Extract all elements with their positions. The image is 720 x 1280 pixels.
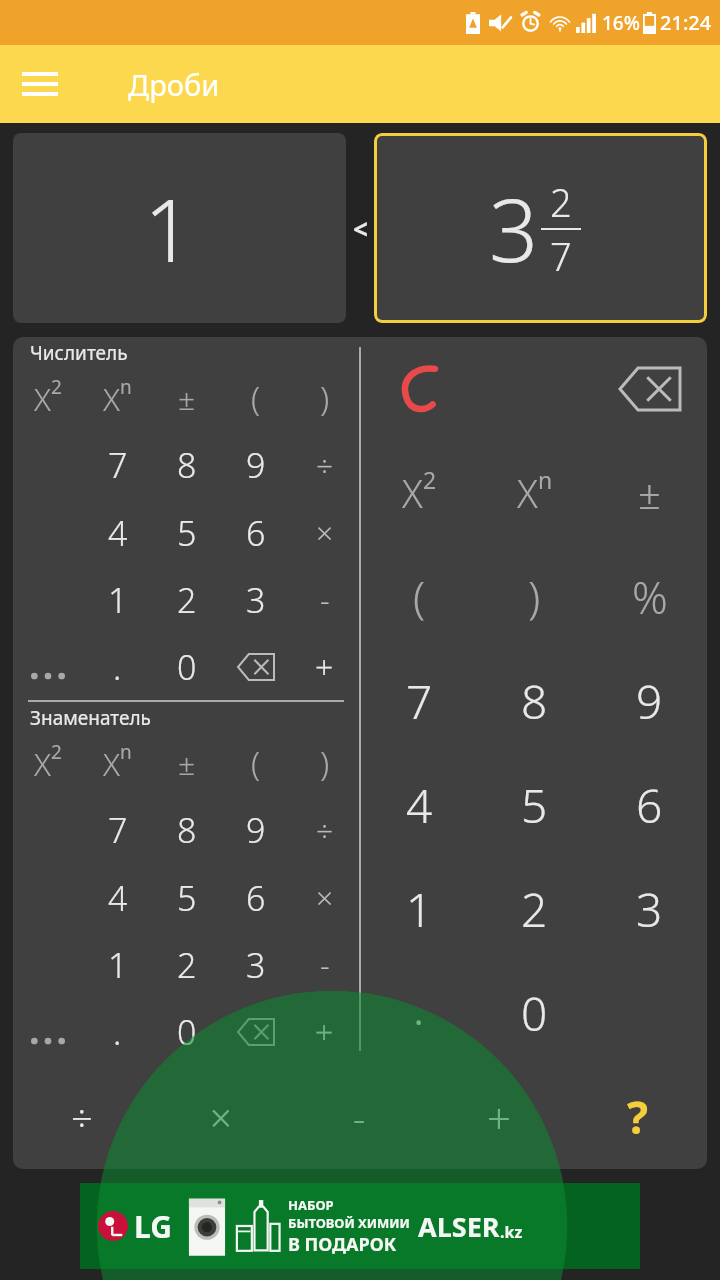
staticText: 7: [406, 670, 433, 733]
button[interactable]: ÷: [13, 1065, 151, 1169]
button[interactable]: -: [290, 931, 359, 998]
staticText: +: [487, 1089, 511, 1146]
staticText: X: [103, 743, 120, 785]
button[interactable]: +: [290, 633, 359, 700]
button[interactable]: X to the power of n: [83, 731, 152, 796]
button[interactable]: 8: [477, 649, 592, 753]
button[interactable]: More: [13, 998, 83, 1065]
staticText: ?: [627, 1087, 648, 1147]
button[interactable]: Clear: [361, 337, 477, 441]
staticText: 2: [423, 464, 437, 495]
button[interactable]: (: [221, 731, 290, 796]
staticText: X: [103, 378, 120, 420]
button[interactable]: 5: [152, 864, 221, 931]
button[interactable]: Backspace: [221, 998, 290, 1065]
button[interactable]: X to the power of 2: [13, 731, 83, 796]
button[interactable]: .: [361, 961, 477, 1065]
button[interactable]: ±: [592, 441, 707, 545]
button[interactable]: X to the power of 2: [361, 441, 477, 545]
button[interactable]: ÷: [290, 431, 359, 499]
button[interactable]: 9: [221, 431, 290, 499]
button[interactable]: 8: [152, 431, 221, 499]
button[interactable]: +: [290, 998, 359, 1065]
button[interactable]: -: [290, 566, 359, 633]
button[interactable]: X to the power of n: [477, 441, 592, 545]
button[interactable]: ): [290, 731, 359, 796]
staticText: 4: [108, 875, 128, 921]
button[interactable]: ×: [290, 499, 359, 566]
button[interactable]: 3: [374, 133, 707, 323]
button[interactable]: More: [13, 633, 83, 700]
button[interactable]: ×: [151, 1065, 290, 1169]
staticText: .kz: [500, 1221, 523, 1243]
button[interactable]: 4: [361, 753, 477, 857]
staticText: +: [315, 645, 334, 689]
button[interactable]: ×: [290, 864, 359, 931]
staticText: 9: [246, 807, 266, 853]
button[interactable]: 6: [221, 864, 290, 931]
button[interactable]: 8: [152, 796, 221, 864]
button[interactable]: 7: [361, 649, 477, 753]
button[interactable]: %: [592, 545, 707, 649]
button[interactable]: Open navigation menu: [14, 58, 66, 110]
button[interactable]: ±: [152, 366, 221, 431]
button[interactable]: 5: [477, 753, 592, 857]
button[interactable]: ): [477, 545, 592, 649]
staticText: -: [320, 579, 330, 620]
staticText: 2: [177, 942, 197, 988]
button[interactable]: .: [83, 633, 152, 700]
button[interactable]: 3: [221, 566, 290, 633]
button[interactable]: (: [361, 545, 477, 649]
staticText: Знаменатель: [30, 705, 151, 731]
button[interactable]: 6: [221, 499, 290, 566]
button[interactable]: Help: [568, 1065, 707, 1169]
staticText: 0: [521, 982, 548, 1045]
button[interactable]: ÷: [290, 796, 359, 864]
staticText: %: [632, 567, 668, 627]
button[interactable]: X to the power of n: [83, 366, 152, 431]
button[interactable]: ): [290, 366, 359, 431]
staticText: 3: [489, 170, 539, 287]
button[interactable]: 2: [152, 931, 221, 998]
staticText: .: [413, 976, 425, 1039]
staticText: 9: [246, 442, 266, 488]
button[interactable]: 0: [152, 633, 221, 700]
button[interactable]: Backspace: [592, 337, 707, 441]
staticText: 1: [143, 170, 193, 287]
button[interactable]: 4: [83, 864, 152, 931]
button[interactable]: X to the power of 2: [13, 366, 83, 431]
button[interactable]: 3: [221, 931, 290, 998]
button[interactable]: 1: [13, 133, 346, 323]
button[interactable]: 1: [83, 931, 152, 998]
button[interactable]: (: [221, 366, 290, 431]
button[interactable]: +: [429, 1065, 568, 1169]
button[interactable]: 1: [83, 566, 152, 633]
button[interactable]: .: [83, 998, 152, 1065]
button[interactable]: 1: [361, 857, 477, 961]
button[interactable]: Backspace: [221, 633, 290, 700]
button[interactable]: Advertisement: ALSER.kz: [80, 1183, 640, 1269]
staticText: X: [402, 467, 423, 519]
button[interactable]: 3: [592, 857, 707, 961]
staticText: ×: [210, 1091, 232, 1143]
staticText: 7: [550, 230, 572, 282]
button[interactable]: 7: [83, 796, 152, 864]
button[interactable]: 5: [152, 499, 221, 566]
button[interactable]: 2: [477, 857, 592, 961]
button[interactable]: 2: [152, 566, 221, 633]
button[interactable]: 9: [221, 796, 290, 864]
button[interactable]: 0: [152, 998, 221, 1065]
staticText: LG: [134, 1206, 172, 1247]
button[interactable]: ±: [152, 731, 221, 796]
button[interactable]: 7: [83, 431, 152, 499]
staticText: 0: [177, 1009, 197, 1055]
staticText: 3: [246, 942, 266, 988]
button[interactable]: 9: [592, 649, 707, 753]
button[interactable]: 6: [592, 753, 707, 857]
button[interactable]: 0: [477, 961, 592, 1065]
staticText: n: [120, 739, 132, 765]
staticText: ±: [178, 743, 196, 784]
button[interactable]: 4: [83, 499, 152, 566]
staticText: 2: [51, 374, 62, 400]
